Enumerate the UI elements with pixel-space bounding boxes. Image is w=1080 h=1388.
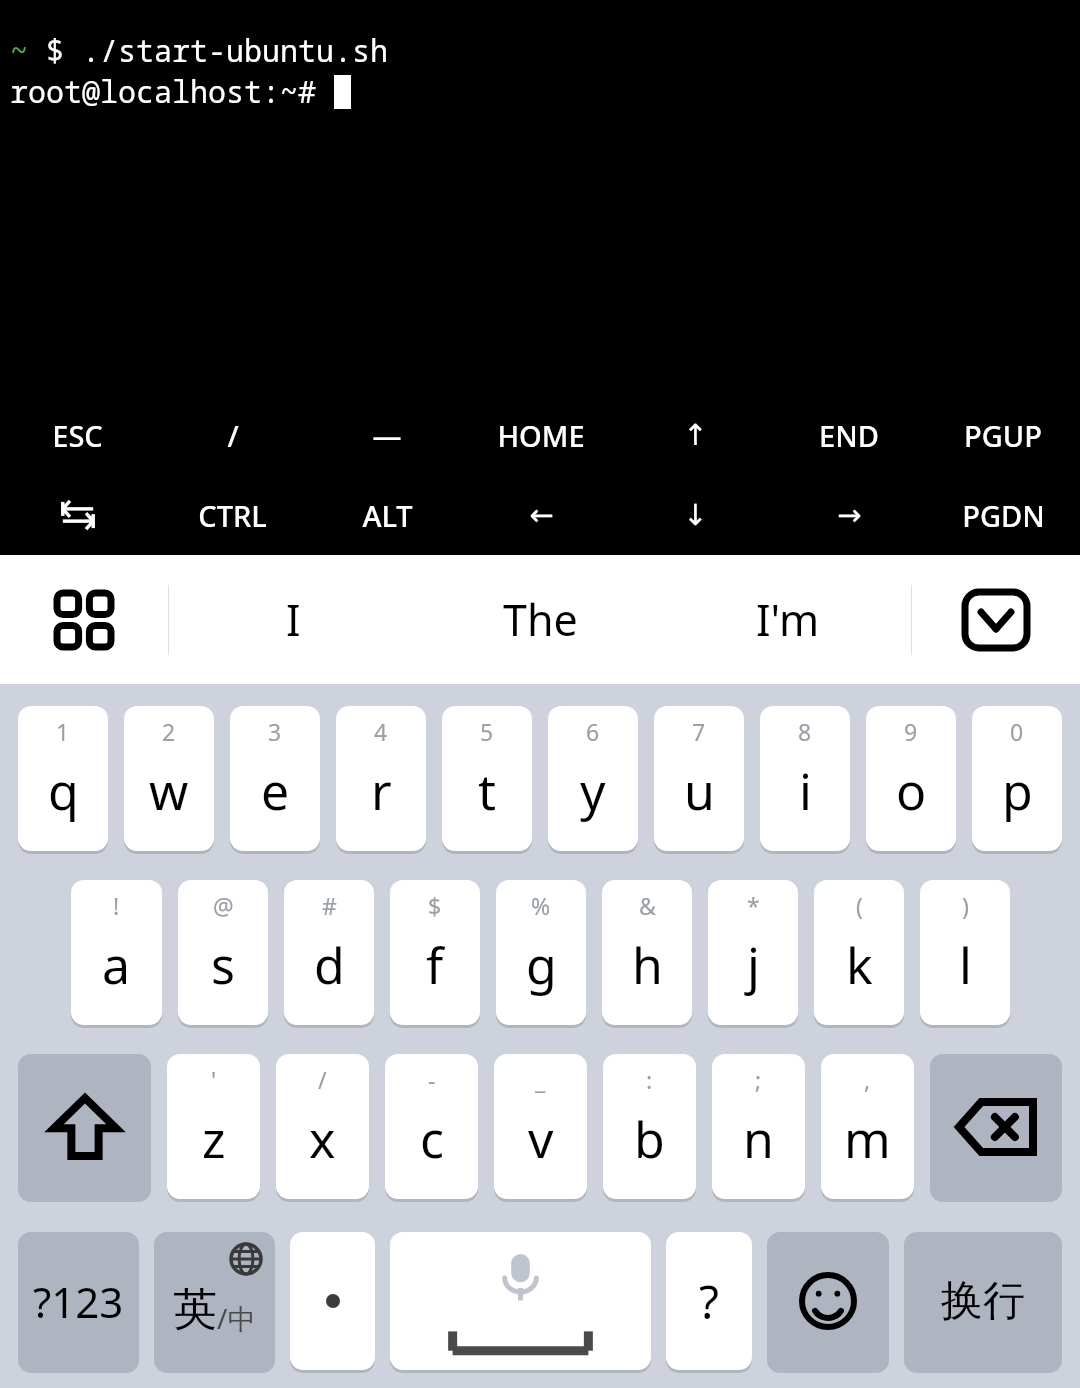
staticText: / — [318, 1064, 327, 1095]
button[interactable]: 9 — [866, 706, 956, 851]
button[interactable]: ESC — [0, 395, 155, 475]
staticText: $ ./start-ubuntu.sh — [46, 30, 388, 71]
staticText: 9 — [904, 716, 918, 747]
staticText: r — [371, 757, 392, 825]
button[interactable]: I — [169, 555, 417, 684]
staticText: w — [149, 757, 189, 825]
staticText: ?123 — [33, 1273, 124, 1330]
staticText: t — [478, 757, 497, 825]
button[interactable]: The — [417, 555, 664, 684]
button[interactable]: PGDN — [926, 475, 1080, 555]
staticText: I'm — [756, 590, 820, 649]
staticText: a — [102, 931, 131, 999]
staticText: o — [896, 757, 927, 825]
button[interactable]: Space — [390, 1232, 651, 1370]
staticText: i — [799, 757, 812, 825]
button[interactable]: 6 — [548, 706, 638, 851]
button[interactable]: # — [284, 880, 374, 1025]
staticText: y — [580, 757, 606, 825]
button[interactable]: $ — [390, 880, 480, 1025]
staticText: 6 — [586, 716, 600, 747]
staticText: ) — [962, 890, 969, 921]
staticText: $ — [428, 890, 442, 921]
staticText: ALT — [362, 496, 413, 535]
button[interactable]: 1 — [18, 706, 108, 851]
button[interactable]: 5 — [442, 706, 532, 851]
button[interactable]: 8 — [760, 706, 850, 851]
staticText: ← — [529, 498, 554, 532]
button[interactable]: ?123 — [18, 1232, 139, 1370]
staticText: # — [322, 890, 337, 921]
staticText: % — [531, 890, 551, 921]
staticText: 1 — [56, 716, 70, 747]
staticText: ? — [699, 1270, 719, 1333]
staticText: e — [261, 757, 290, 825]
button[interactable]: Emoji — [767, 1232, 889, 1370]
button[interactable]: I'm — [664, 555, 911, 684]
button[interactable]: & — [602, 880, 692, 1025]
staticText: q — [48, 757, 79, 825]
staticText: 英 — [173, 1282, 217, 1337]
button[interactable]: ↓ — [618, 475, 772, 555]
button[interactable]: Tab — [0, 475, 155, 555]
button[interactable]: Backspace — [930, 1054, 1062, 1199]
staticText: ! — [113, 890, 120, 921]
button[interactable]: / — [276, 1054, 369, 1199]
button[interactable]: / — [155, 395, 310, 475]
staticText: @ — [213, 890, 234, 921]
staticText: 5 — [480, 716, 494, 747]
button[interactable]: Shift — [18, 1054, 151, 1199]
staticText: HOME — [497, 416, 585, 455]
button[interactable]: ) — [920, 880, 1010, 1025]
staticText: root@localhost:~# — [10, 71, 334, 112]
button[interactable]: 0 — [972, 706, 1062, 851]
button[interactable]: ' — [167, 1054, 260, 1199]
staticText: 2 — [162, 716, 176, 747]
button[interactable]: HOME — [464, 395, 618, 475]
button[interactable]: ↑ — [618, 395, 772, 475]
staticText: n — [743, 1105, 774, 1173]
button[interactable]: , — [821, 1054, 914, 1199]
staticText: PGUP — [964, 416, 1042, 455]
staticText: - — [428, 1064, 436, 1095]
staticText: d — [314, 931, 345, 999]
button[interactable]: 3 — [230, 706, 320, 851]
button[interactable]: 英 — [154, 1232, 275, 1370]
button[interactable]: CTRL — [155, 475, 310, 555]
button[interactable]: Hide keyboard — [912, 555, 1080, 684]
button[interactable]: ← — [464, 475, 618, 555]
button[interactable]: ; — [712, 1054, 805, 1199]
button[interactable]: — — [310, 395, 464, 475]
button[interactable]: ! — [71, 880, 162, 1025]
button[interactable]: Menu — [0, 555, 168, 684]
button[interactable]: 换行 — [904, 1232, 1062, 1370]
button[interactable]: 4 — [336, 706, 426, 851]
button[interactable]: PGUP — [926, 395, 1080, 475]
staticText: ( — [856, 890, 863, 921]
staticText: ~ — [10, 30, 46, 71]
button[interactable]: * — [708, 880, 798, 1025]
button[interactable]: 2 — [124, 706, 214, 851]
button[interactable]: ? — [666, 1232, 752, 1370]
staticText: ESC — [52, 416, 103, 455]
staticText: → — [837, 498, 862, 532]
staticText: & — [639, 890, 656, 921]
button[interactable]: ( — [814, 880, 904, 1025]
button[interactable]: END — [772, 395, 926, 475]
button[interactable] — [290, 1232, 375, 1370]
button[interactable]: @ — [178, 880, 268, 1025]
button[interactable]: % — [496, 880, 586, 1025]
button[interactable]: - — [385, 1054, 478, 1199]
button[interactable]: 7 — [654, 706, 744, 851]
staticText: ↑ — [683, 418, 708, 452]
staticText: 7 — [692, 716, 706, 747]
button[interactable]: → — [772, 475, 926, 555]
button[interactable]: ALT — [310, 475, 464, 555]
button[interactable]: : — [603, 1054, 696, 1199]
staticText: ; — [755, 1064, 762, 1095]
staticText: f — [426, 931, 444, 999]
button[interactable]: _ — [494, 1054, 587, 1199]
staticText: , — [864, 1064, 871, 1095]
staticText: ' — [211, 1064, 217, 1095]
staticText: s — [211, 931, 235, 999]
